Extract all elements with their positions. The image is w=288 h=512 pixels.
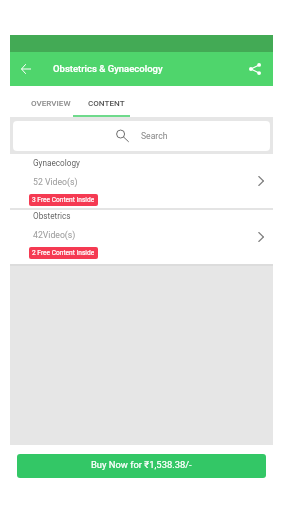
staticText: CONTENT	[88, 98, 125, 107]
staticText: 52 Video(s)	[33, 177, 78, 187]
staticText: Search	[141, 131, 168, 141]
button[interactable]: Gynaecology	[10, 154, 273, 208]
staticText: 2 Free Content Inside	[32, 249, 95, 257]
staticText: 3 Free Content Inside	[32, 196, 95, 204]
button[interactable]: Obstetrics	[10, 210, 273, 264]
button[interactable]: OVERVIEW	[26, 86, 73, 117]
button[interactable]: Search	[13, 121, 270, 151]
staticText: Buy Now for ₹1,538.38/-	[91, 459, 192, 470]
button[interactable]: Back	[14, 57, 38, 81]
staticText: Gynaecology	[33, 158, 80, 168]
staticText: Obstetrics	[33, 211, 71, 221]
staticText: 42Video(s)	[33, 230, 76, 240]
button[interactable]: Share	[243, 57, 267, 81]
button[interactable]: CONTENT	[73, 86, 130, 117]
button[interactable]: Buy Now for ₹1,538.38/-	[17, 454, 266, 478]
staticText: Obstetrics & Gynaecology	[53, 63, 163, 74]
staticText: OVERVIEW	[31, 98, 71, 107]
